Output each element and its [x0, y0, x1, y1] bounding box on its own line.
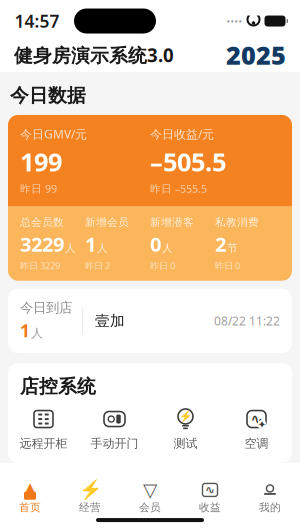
staticText: ▲: [25, 480, 34, 494]
staticText: 昨日 0: [215, 259, 240, 272]
staticText: 健身房演示系统3.0: [14, 43, 174, 67]
staticText: 0: [150, 231, 161, 257]
staticText: ⚡: [78, 479, 101, 501]
staticText: 店控系统: [20, 375, 96, 398]
button[interactable]: 我的: [240, 482, 300, 514]
staticText: 远程开柜: [19, 436, 67, 451]
staticText: 人: [97, 242, 108, 255]
staticText: 今日到店: [20, 300, 72, 316]
staticText: 总会员数: [20, 216, 64, 229]
staticText: 空调: [244, 436, 268, 451]
button[interactable]: ⚡: [60, 482, 120, 514]
staticText: ▽: [143, 479, 157, 501]
staticText: 人: [162, 242, 173, 255]
staticText: ✦: [257, 418, 266, 431]
staticText: 1: [85, 231, 96, 257]
staticText: ⚡: [179, 410, 192, 423]
staticText: 首页: [19, 501, 41, 514]
staticText: 壹加: [95, 312, 125, 330]
staticText: 3229: [20, 231, 64, 257]
staticText: 人: [65, 242, 76, 255]
staticText: 经营: [79, 501, 101, 514]
staticText: 199: [20, 145, 62, 178]
button[interactable]: ⚡: [150, 408, 221, 451]
staticText: 2: [215, 231, 226, 257]
staticText: 新增潜客: [150, 216, 194, 229]
staticText: 手动开门: [90, 436, 138, 451]
button[interactable]: 手动开门: [79, 408, 150, 451]
staticText: 昨日 99: [20, 181, 57, 196]
staticText: 昨日 3229: [20, 259, 60, 272]
button[interactable]: 今日到店: [8, 289, 292, 353]
staticText: 今日数据: [10, 84, 86, 107]
button[interactable]: ∿: [180, 482, 240, 514]
button[interactable]: ∿: [221, 408, 292, 451]
staticText: 私教消费: [215, 216, 259, 229]
staticText: 人: [31, 326, 43, 341]
staticText: 昨日 0: [150, 259, 175, 272]
button[interactable]: ▽: [120, 482, 180, 514]
staticText: 1: [20, 319, 30, 342]
staticText: 昨日 –555.5: [150, 181, 207, 196]
staticText: 08/22 11:22: [214, 313, 280, 329]
staticText: ••••: [226, 15, 242, 27]
staticText: 会员: [139, 501, 161, 514]
button[interactable]: 远程开柜: [8, 408, 79, 451]
staticText: 测试: [173, 436, 197, 451]
staticText: 14:57: [14, 9, 59, 32]
staticText: ∿: [205, 483, 215, 497]
staticText: 节: [227, 242, 238, 255]
staticText: 收益: [199, 501, 221, 514]
staticText: –505.5: [150, 145, 226, 178]
button[interactable]: ▲: [0, 482, 60, 514]
staticText: 今日收益/元: [150, 126, 214, 142]
staticText: 新增会员: [85, 216, 129, 229]
staticText: 昨日 2: [85, 259, 110, 272]
staticText: 2025: [226, 38, 286, 72]
staticText: ∿: [250, 411, 262, 427]
staticText: 我的: [259, 501, 281, 514]
staticText: 今日GMV/元: [20, 126, 87, 142]
